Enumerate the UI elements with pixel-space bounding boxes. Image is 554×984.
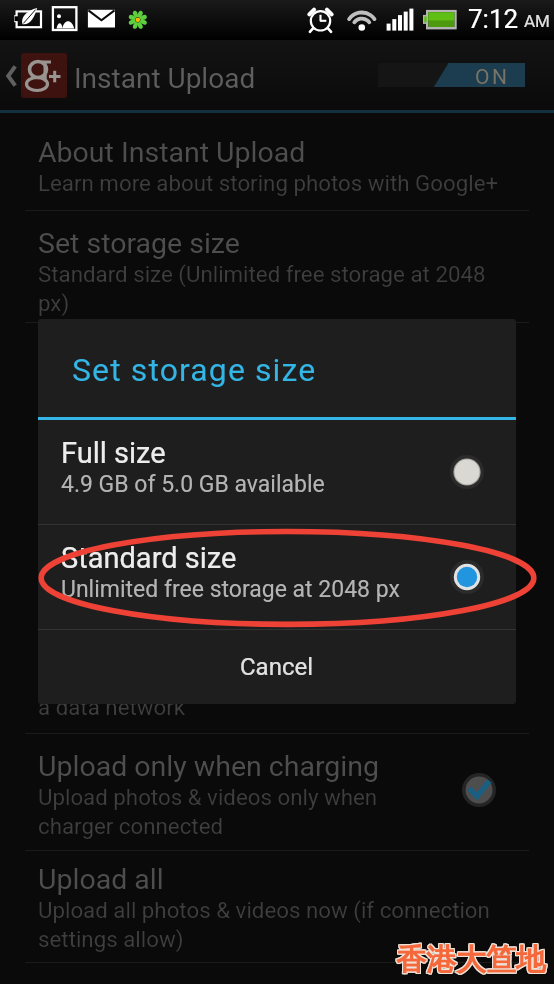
button[interactable]: Cancel <box>38 630 516 704</box>
button[interactable]: Upload only when charging <box>0 740 554 850</box>
staticText: 香港大笪地 <box>397 941 547 979</box>
staticText: 香港大笪地 <box>395 940 545 978</box>
button[interactable]: Upload all <box>0 853 554 962</box>
staticText: Set storage size <box>38 227 240 260</box>
staticText: Cancel <box>240 653 314 681</box>
staticText: 香港大笪地 <box>395 942 545 980</box>
button[interactable]: Standard size <box>38 525 516 629</box>
staticText: Upload all <box>38 863 164 896</box>
button[interactable]: Full size <box>38 420 516 524</box>
staticText: Full size <box>61 436 166 470</box>
button[interactable]: About Instant Upload <box>0 126 554 210</box>
staticText: 香港大笪地 <box>397 940 547 978</box>
staticText: 香港大笪地 <box>395 941 545 979</box>
staticText: 香港大笪地 <box>396 941 546 979</box>
staticText: Unlimited free storage at 2048 px <box>61 576 400 603</box>
staticText: Standard size <box>61 541 237 575</box>
button[interactable]: Instant upload on <box>378 63 525 87</box>
staticText: Upload over <box>38 337 189 370</box>
staticText: Upload photos & videos only when connect… <box>38 665 513 721</box>
staticText: Upload all photos & videos now (if conne… <box>38 897 490 953</box>
staticText: Upload photos & videos only when connect… <box>38 371 513 397</box>
staticText: About Instant Upload <box>38 136 306 169</box>
staticText: Standard size (Unlimited free storage at… <box>38 261 486 317</box>
button[interactable]: Set storage size <box>0 217 554 322</box>
staticText: 7:12 <box>468 4 519 34</box>
button[interactable]: Upload over <box>0 327 554 733</box>
staticText: 4.9 GB of 5.0 GB available <box>61 471 325 498</box>
button[interactable]: Only over Wi-Fi <box>0 621 554 741</box>
staticText: Upload photos & videos only when charger… <box>38 784 378 840</box>
button[interactable]: Navigate up <box>0 40 554 113</box>
staticText: 香港大笪地 <box>396 942 546 980</box>
staticText: 香港大笪地 <box>397 942 547 980</box>
staticText: Instant Upload <box>74 62 256 95</box>
staticText: 香港大笪地 <box>396 940 546 978</box>
staticText: ON <box>475 65 510 89</box>
staticText: AM <box>524 11 550 31</box>
staticText: Upload only when charging <box>38 750 380 783</box>
staticText: Set storage size <box>72 351 317 389</box>
staticText: Learn more about storing photos with Goo… <box>38 170 499 196</box>
